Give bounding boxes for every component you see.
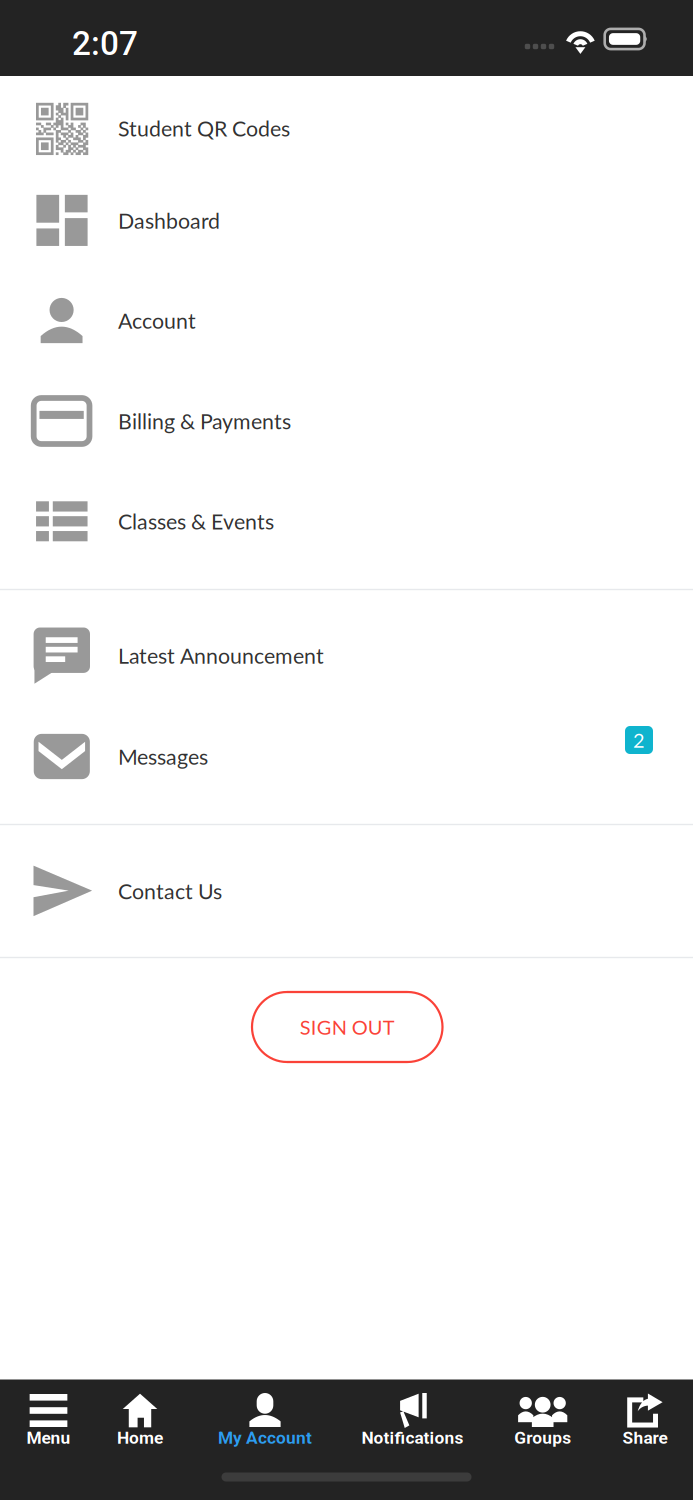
staticText: Groups bbox=[514, 1428, 571, 1448]
button[interactable]: Dashboard bbox=[0, 0, 693, 96]
staticText: 2:07 bbox=[72, 24, 138, 63]
staticText: Student QR Codes bbox=[118, 115, 290, 141]
staticText: Dashboard bbox=[118, 208, 220, 233]
staticText: Billing & Payments bbox=[118, 408, 291, 434]
staticText: 2 bbox=[633, 728, 645, 752]
button[interactable]: Student QR Codes bbox=[0, 0, 693, 98]
staticText: Classes & Events bbox=[118, 508, 274, 534]
button[interactable]: Billing & Payments bbox=[0, 0, 693, 100]
button[interactable]: Notifications bbox=[0, 0, 151, 101]
staticText: Latest Announcement bbox=[118, 643, 324, 668]
button[interactable]: Latest Announcement bbox=[0, 0, 693, 116]
staticText: Menu bbox=[26, 1428, 70, 1448]
staticText: Account bbox=[118, 308, 196, 333]
button[interactable]: Account bbox=[0, 0, 693, 101]
staticText: SIGN OUT bbox=[300, 1015, 395, 1039]
button[interactable]: Share bbox=[0, 0, 95, 101]
button[interactable]: Menu bbox=[0, 0, 92, 101]
button[interactable]: Messages bbox=[0, 0, 693, 118]
staticText: Messages bbox=[118, 744, 208, 769]
button[interactable]: 2 bbox=[625, 726, 653, 754]
staticText: My Account bbox=[218, 1428, 312, 1448]
staticText: Notifications bbox=[361, 1428, 463, 1448]
button[interactable]: SIGN OUT bbox=[252, 992, 442, 1062]
button[interactable]: My Account bbox=[0, 0, 143, 101]
button[interactable]: Home bbox=[0, 0, 91, 101]
staticText: Home bbox=[117, 1428, 163, 1448]
staticText: Contact Us bbox=[118, 878, 222, 904]
staticText: Share bbox=[622, 1428, 667, 1448]
button[interactable]: Contact Us bbox=[0, 0, 693, 132]
button[interactable]: Groups bbox=[0, 0, 107, 101]
button[interactable]: Classes & Events bbox=[0, 0, 693, 118]
